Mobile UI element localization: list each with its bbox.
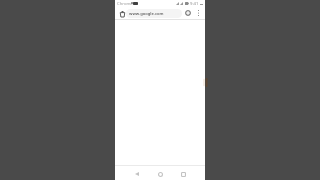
button[interactable]: Home: [154, 167, 166, 180]
button[interactable]: Site information: [117, 8, 128, 19]
button[interactable]: Back: [131, 167, 143, 180]
staticText: Chrome: [117, 1, 133, 7]
staticText: 9:41: [190, 1, 199, 7]
button[interactable]: www.google.com: [126, 9, 182, 18]
staticText: www.google.com: [129, 11, 164, 17]
button[interactable]: Reload page: [183, 8, 193, 18]
button[interactable]: More options: [193, 8, 203, 18]
button[interactable]: Recent apps: [177, 167, 189, 180]
